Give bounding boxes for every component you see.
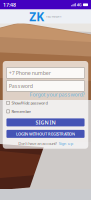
staticText: Don't have an account? [18,141,57,146]
staticText: LOGIN WITHOUT REGISTRATION [16,131,75,136]
staticText: Remember [11,109,31,114]
button[interactable]: Show/Hide password [6,101,85,105]
button[interactable]: Remember [6,109,85,113]
staticText: ZK [29,8,44,24]
staticText: Sign up [59,141,73,146]
staticText: 17:48 [3,1,16,8]
staticText: Show/Hide password [11,100,47,105]
button[interactable]: Forgot your password? [6,91,85,97]
staticText: Password [9,82,33,89]
staticText: SIGN IN [35,119,55,126]
staticText: 4G [77,2,82,7]
staticText: Forgot your password? [29,91,84,98]
button[interactable]: Sign up [59,141,73,146]
staticText: +7 Phone number [9,69,51,76]
staticText: наш магазин [46,15,62,18]
button[interactable]: SIGN IN [6,118,85,126]
button[interactable]: LOGIN WITHOUT REGISTRATION [6,130,85,138]
